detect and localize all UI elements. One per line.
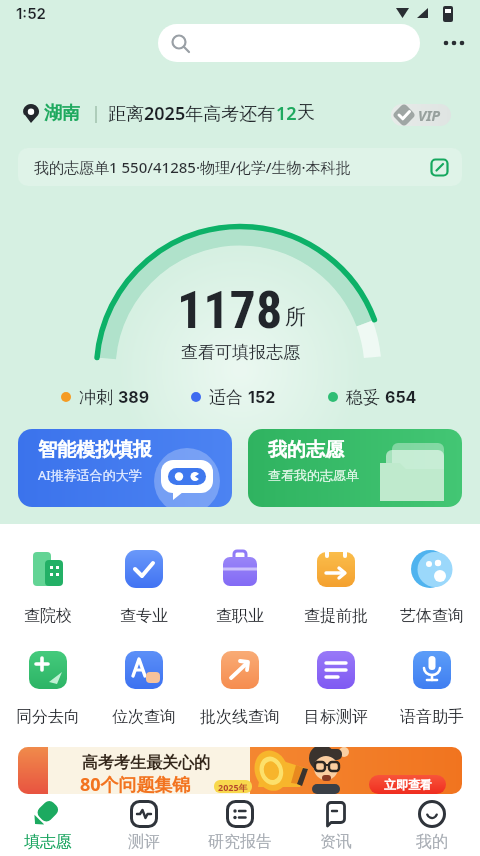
button[interactable] [158, 24, 420, 62]
staticText: 2025年 [218, 781, 248, 793]
staticText: 查院校 [24, 606, 72, 626]
button[interactable] [248, 429, 462, 507]
staticText: 艺体查询 [400, 606, 464, 626]
staticText: 我的志愿 [268, 438, 344, 462]
staticText: AI推荐适合的大学 [38, 466, 142, 484]
staticText: 测评 [128, 832, 160, 852]
button[interactable]: 立即查看 [369, 775, 446, 794]
staticText: 湖南 [44, 102, 80, 125]
staticText: 适合 [209, 387, 243, 408]
staticText: VIP [418, 106, 441, 125]
staticText: 查专业 [120, 606, 168, 626]
button[interactable] [18, 543, 78, 631]
button[interactable] [18, 798, 78, 856]
button[interactable] [306, 543, 366, 631]
staticText: 天 [297, 101, 315, 124]
staticText: 资讯 [320, 832, 352, 852]
staticText: 立即查看 [384, 777, 432, 792]
staticText: 80个问题集锦 [80, 772, 191, 794]
button[interactable] [306, 645, 366, 733]
button[interactable] [210, 645, 270, 733]
button[interactable] [391, 104, 451, 126]
staticText: 12 [276, 101, 297, 126]
button[interactable] [18, 429, 232, 507]
staticText: 所 [285, 304, 306, 330]
button[interactable] [210, 543, 270, 631]
staticText: 位次查询 [112, 707, 176, 727]
staticText: 389 [118, 387, 150, 406]
staticText: 查看我的志愿单 [268, 467, 359, 483]
button[interactable] [402, 543, 462, 631]
button[interactable] [18, 645, 78, 733]
button[interactable] [442, 36, 472, 50]
button[interactable] [402, 645, 462, 733]
staticText: 批次线查询 [200, 707, 280, 727]
button[interactable] [18, 148, 462, 186]
staticText: 我的 [416, 832, 448, 852]
staticText: 同分去向 [16, 707, 80, 727]
button[interactable] [114, 645, 174, 733]
staticText: 智能模拟填报 [38, 438, 152, 462]
staticText: 距离2025年高考还有 [108, 101, 276, 126]
staticText: 目标测评 [304, 707, 368, 727]
button[interactable] [114, 543, 174, 631]
staticText: 填志愿 [24, 832, 72, 852]
button[interactable] [306, 798, 366, 856]
staticText: 语音助手 [400, 707, 464, 727]
staticText: 我的志愿单1 550/41285·物理/化学/生物·本科批 [34, 157, 351, 177]
staticText: 查职业 [216, 606, 264, 626]
staticText: 研究报告 [208, 832, 272, 852]
button[interactable] [205, 798, 275, 856]
button[interactable] [114, 798, 174, 856]
staticText: 654 [385, 387, 417, 406]
staticText: 稳妥 [346, 387, 380, 408]
staticText: 1178 [177, 280, 283, 338]
staticText: 查提前批 [304, 606, 368, 626]
button[interactable]: 高考考生最关心的 [18, 747, 462, 794]
button[interactable] [402, 798, 462, 856]
button[interactable] [140, 270, 340, 370]
staticText: 查看可填报志愿 [181, 342, 300, 363]
staticText: 高考考生最关心的 [82, 753, 210, 773]
staticText: 1:52 [16, 4, 46, 22]
staticText: 冲刺 [79, 387, 113, 408]
staticText: 152 [248, 387, 276, 406]
